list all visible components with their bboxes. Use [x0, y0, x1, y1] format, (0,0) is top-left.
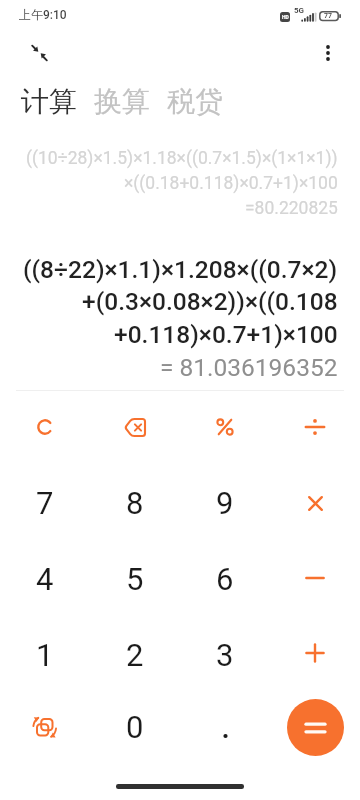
button[interactable]: 6 — [180, 541, 270, 617]
button[interactable] — [270, 389, 360, 465]
button[interactable]: 8 — [90, 465, 180, 541]
button[interactable] — [0, 693, 90, 761]
staticText: 2 — [126, 637, 144, 673]
button[interactable] — [270, 693, 360, 761]
button[interactable]: 4 — [0, 541, 90, 617]
button[interactable] — [315, 40, 340, 65]
staticText: 3 — [216, 637, 234, 673]
staticText: 5G — [294, 6, 305, 15]
button[interactable] — [287, 699, 344, 756]
button[interactable] — [26, 39, 52, 65]
button[interactable]: 税贷 — [167, 84, 223, 119]
button[interactable]: 9 — [180, 465, 270, 541]
button[interactable]: 3 — [180, 617, 270, 693]
button[interactable] — [90, 389, 180, 465]
staticText: 77 — [324, 12, 333, 20]
staticText: 税贷 — [167, 84, 223, 119]
staticText: 上午9:10 — [19, 7, 67, 22]
button[interactable] — [0, 389, 90, 465]
staticText: 8 — [126, 485, 144, 521]
staticText: 换算 — [94, 84, 150, 119]
button[interactable] — [180, 693, 270, 761]
staticText: 7 — [36, 485, 54, 521]
button[interactable]: 换算 — [94, 84, 150, 119]
button[interactable] — [270, 465, 360, 541]
staticText: 5 — [126, 561, 144, 597]
staticText: =80.220825 — [245, 198, 338, 219]
button[interactable]: 5 — [90, 541, 180, 617]
staticText: HD — [282, 14, 289, 20]
staticText: +(0.3×0.08×2))×((0.108 — [82, 287, 338, 316]
staticText: ×((0.18+0.118)×0.7+1)×100 — [124, 173, 338, 194]
staticText: = 81.036196352 — [160, 353, 338, 382]
staticText: +0.118)×0.7+1)×100 — [114, 320, 338, 349]
button[interactable] — [270, 617, 360, 693]
button[interactable]: 1 — [0, 617, 90, 693]
button[interactable]: 0 — [90, 693, 180, 761]
staticText: 0 — [126, 709, 144, 745]
staticText: 1 — [36, 637, 54, 673]
staticText: 9 — [216, 485, 234, 521]
button[interactable] — [270, 541, 360, 617]
staticText: ((8÷22)×1.1)×1.208×((0.7×2) — [23, 255, 338, 284]
button[interactable]: 7 — [0, 465, 90, 541]
button[interactable] — [180, 389, 270, 465]
staticText: ((10÷28)×1.5)×1.18×((0.7×1.5)×(1×1×1)) — [26, 148, 338, 169]
staticText: 4 — [36, 561, 54, 597]
button[interactable]: 计算 — [21, 84, 77, 119]
button[interactable]: 2 — [90, 617, 180, 693]
staticText: 计算 — [21, 84, 77, 119]
staticText: 6 — [216, 561, 234, 597]
